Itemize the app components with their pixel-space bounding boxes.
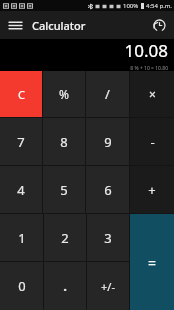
button[interactable]: +/- xyxy=(87,262,129,310)
button[interactable]: + xyxy=(130,166,174,213)
staticText: 3 xyxy=(104,229,112,247)
staticText: 4 xyxy=(17,181,25,199)
staticText: 10.08 xyxy=(124,39,168,62)
staticText: - xyxy=(150,133,155,151)
button[interactable]: - xyxy=(130,118,174,165)
staticText: 100% xyxy=(123,2,139,10)
staticText: / xyxy=(105,85,110,103)
button[interactable]: Open navigation menu xyxy=(4,14,26,36)
staticText: 8 % + 10 = 10.80 xyxy=(130,65,168,71)
button[interactable]: × xyxy=(130,71,174,117)
staticText: 7 xyxy=(17,133,25,151)
button[interactable]: 2 xyxy=(44,214,86,261)
staticText: × xyxy=(149,86,156,102)
staticText: 9 xyxy=(104,133,112,151)
button[interactable]: 7 xyxy=(0,118,42,165)
staticText: 1 xyxy=(18,229,26,247)
staticText: 0 xyxy=(18,277,26,295)
button[interactable]: = xyxy=(130,214,174,310)
button[interactable]: C xyxy=(0,71,42,117)
button[interactable]: / xyxy=(86,71,129,117)
staticText: + xyxy=(148,181,156,199)
staticText: 8 xyxy=(60,133,68,151)
button[interactable]: 0 xyxy=(0,262,43,310)
staticText: 5 xyxy=(60,181,68,199)
button[interactable]: . xyxy=(44,262,86,310)
staticText: Calculator xyxy=(32,18,86,33)
button[interactable]: 8 xyxy=(43,118,85,165)
staticText: 2 xyxy=(61,229,69,247)
staticText: 4:54 p.m. xyxy=(146,2,172,10)
button[interactable]: 4 xyxy=(0,166,42,213)
button[interactable]: 6 xyxy=(86,166,129,213)
staticText: = xyxy=(148,253,157,272)
staticText: . xyxy=(63,277,67,295)
staticText: 6 xyxy=(104,181,112,199)
button[interactable]: 5 xyxy=(43,166,85,213)
button[interactable]: 3 xyxy=(87,214,129,261)
staticText: +/- xyxy=(101,279,115,294)
button[interactable]: % xyxy=(43,71,85,117)
staticText: C xyxy=(18,87,25,102)
button[interactable]: 9 xyxy=(86,118,129,165)
staticText: % xyxy=(59,86,69,102)
button[interactable]: 1 xyxy=(0,214,43,261)
button[interactable]: History xyxy=(148,14,170,36)
